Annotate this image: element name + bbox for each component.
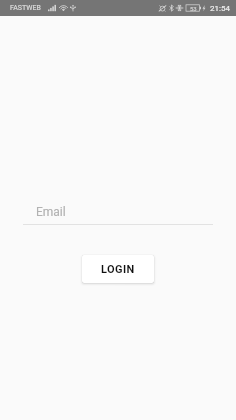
other: Battery 53 percent (186, 4, 201, 12)
button[interactable]: Email (23, 204, 213, 225)
staticText: 21:54 (210, 4, 230, 13)
staticText: FASTWEB (10, 4, 41, 12)
other: Charging (202, 4, 206, 12)
other: USB connected (70, 4, 76, 12)
staticText: 53 (190, 5, 197, 12)
other: Mobile signal (48, 4, 56, 12)
other: Bluetooth (169, 4, 174, 12)
staticText: LOGIN (101, 263, 135, 276)
button[interactable]: LOGIN (82, 255, 154, 283)
other: Vibrate (176, 4, 183, 12)
other: Wi-Fi (59, 4, 68, 12)
staticText: Email (36, 205, 66, 219)
other: Alarm off (158, 4, 167, 12)
